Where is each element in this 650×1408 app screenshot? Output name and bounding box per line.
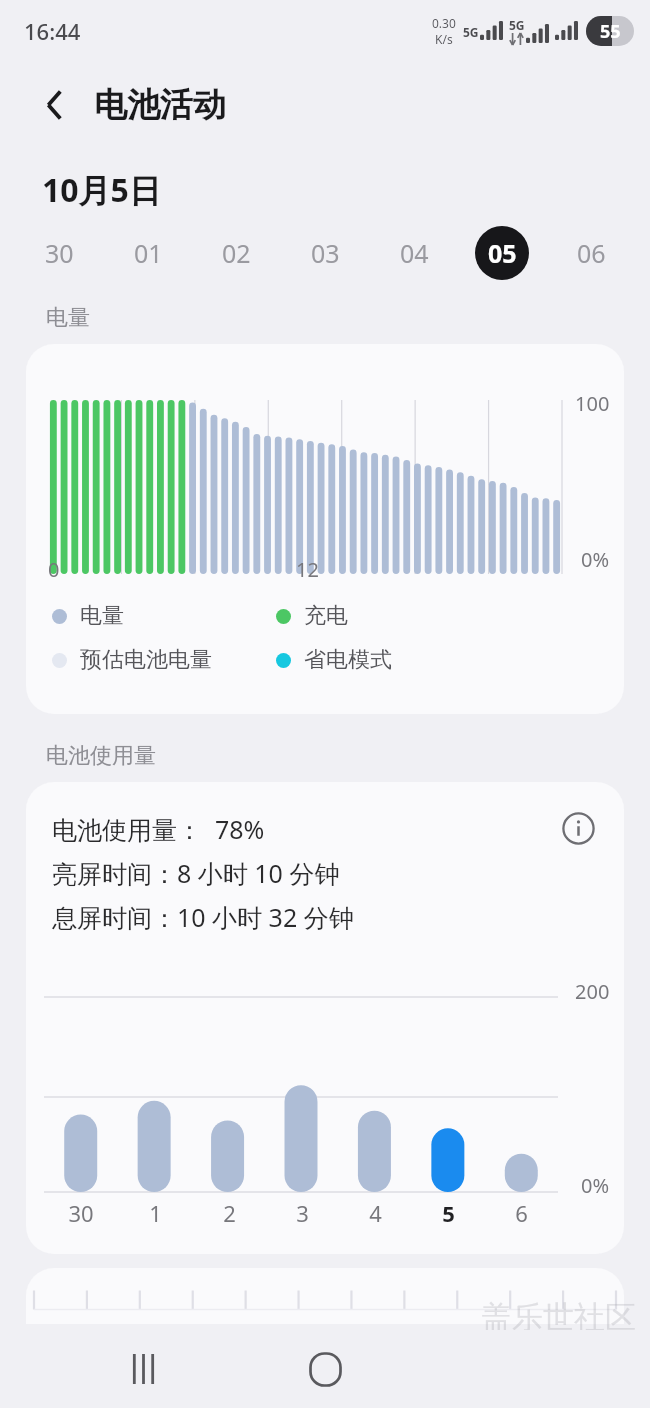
button[interactable]: 02: [209, 226, 263, 280]
staticText: 电量: [80, 602, 124, 630]
staticText: 6: [515, 1198, 528, 1228]
staticText: 05: [488, 236, 517, 270]
staticText: 16:44: [24, 16, 81, 46]
button[interactable]: 30: [32, 226, 86, 280]
staticText: 电量: [46, 304, 90, 332]
button[interactable]: 电量: [52, 602, 276, 630]
staticText: 0.30: [432, 15, 456, 31]
staticText: 0%: [581, 1172, 610, 1199]
staticText: 30: [68, 1198, 94, 1228]
staticText: 息屏时间：10 小时 32 分钟: [52, 900, 354, 934]
button[interactable]: 01: [121, 226, 175, 280]
button[interactable]: Information: [556, 806, 600, 850]
staticText: 03: [311, 236, 340, 270]
staticText: 电池使用量: [46, 742, 156, 770]
staticText: 预估电池电量: [80, 646, 212, 674]
staticText: 30: [45, 236, 74, 270]
staticText: 2: [223, 1198, 236, 1228]
staticText: 充电: [304, 602, 348, 630]
button[interactable]: Home: [293, 1337, 357, 1401]
staticText: 电池使用量： 78%: [52, 812, 265, 846]
staticText: 4: [369, 1198, 382, 1228]
staticText: 10月5日: [42, 168, 161, 212]
staticText: 100: [575, 390, 610, 417]
staticText: 1: [149, 1198, 162, 1228]
staticText: 06: [577, 236, 606, 270]
staticText: 5G: [463, 24, 479, 40]
staticText: 亮屏时间：8 小时 10 分钟: [52, 856, 340, 890]
staticText: 55: [600, 19, 621, 44]
staticText: 盖乐世社区: [481, 1298, 636, 1337]
button[interactable]: 充电: [276, 602, 348, 630]
staticText: 省电模式: [304, 646, 392, 674]
button[interactable]: 06: [564, 226, 618, 280]
button[interactable]: [26, 1268, 624, 1324]
button[interactable]: 100: [26, 344, 624, 714]
staticText: 02: [222, 236, 251, 270]
button[interactable]: 03: [298, 226, 352, 280]
button[interactable]: 电池使用量： 78%: [26, 782, 624, 1254]
button[interactable]: 04: [387, 226, 441, 280]
staticText: 3: [296, 1198, 309, 1228]
staticText: 04: [400, 236, 429, 270]
staticText: K/s: [435, 31, 453, 47]
staticText: 12: [296, 556, 319, 583]
staticText: 200: [575, 978, 610, 1005]
staticText: 0%: [581, 546, 610, 573]
staticText: 5G: [509, 17, 525, 33]
button[interactable]: Back: [32, 82, 78, 128]
button[interactable]: 省电模式: [276, 646, 392, 674]
staticText: 0: [48, 556, 60, 583]
staticText: 电池活动: [94, 84, 226, 126]
staticText: 01: [134, 236, 163, 270]
button[interactable]: 05: [475, 226, 529, 280]
button[interactable]: 预估电池电量: [52, 646, 276, 674]
staticText: 5: [442, 1198, 455, 1228]
button[interactable]: Recent apps: [112, 1338, 174, 1400]
